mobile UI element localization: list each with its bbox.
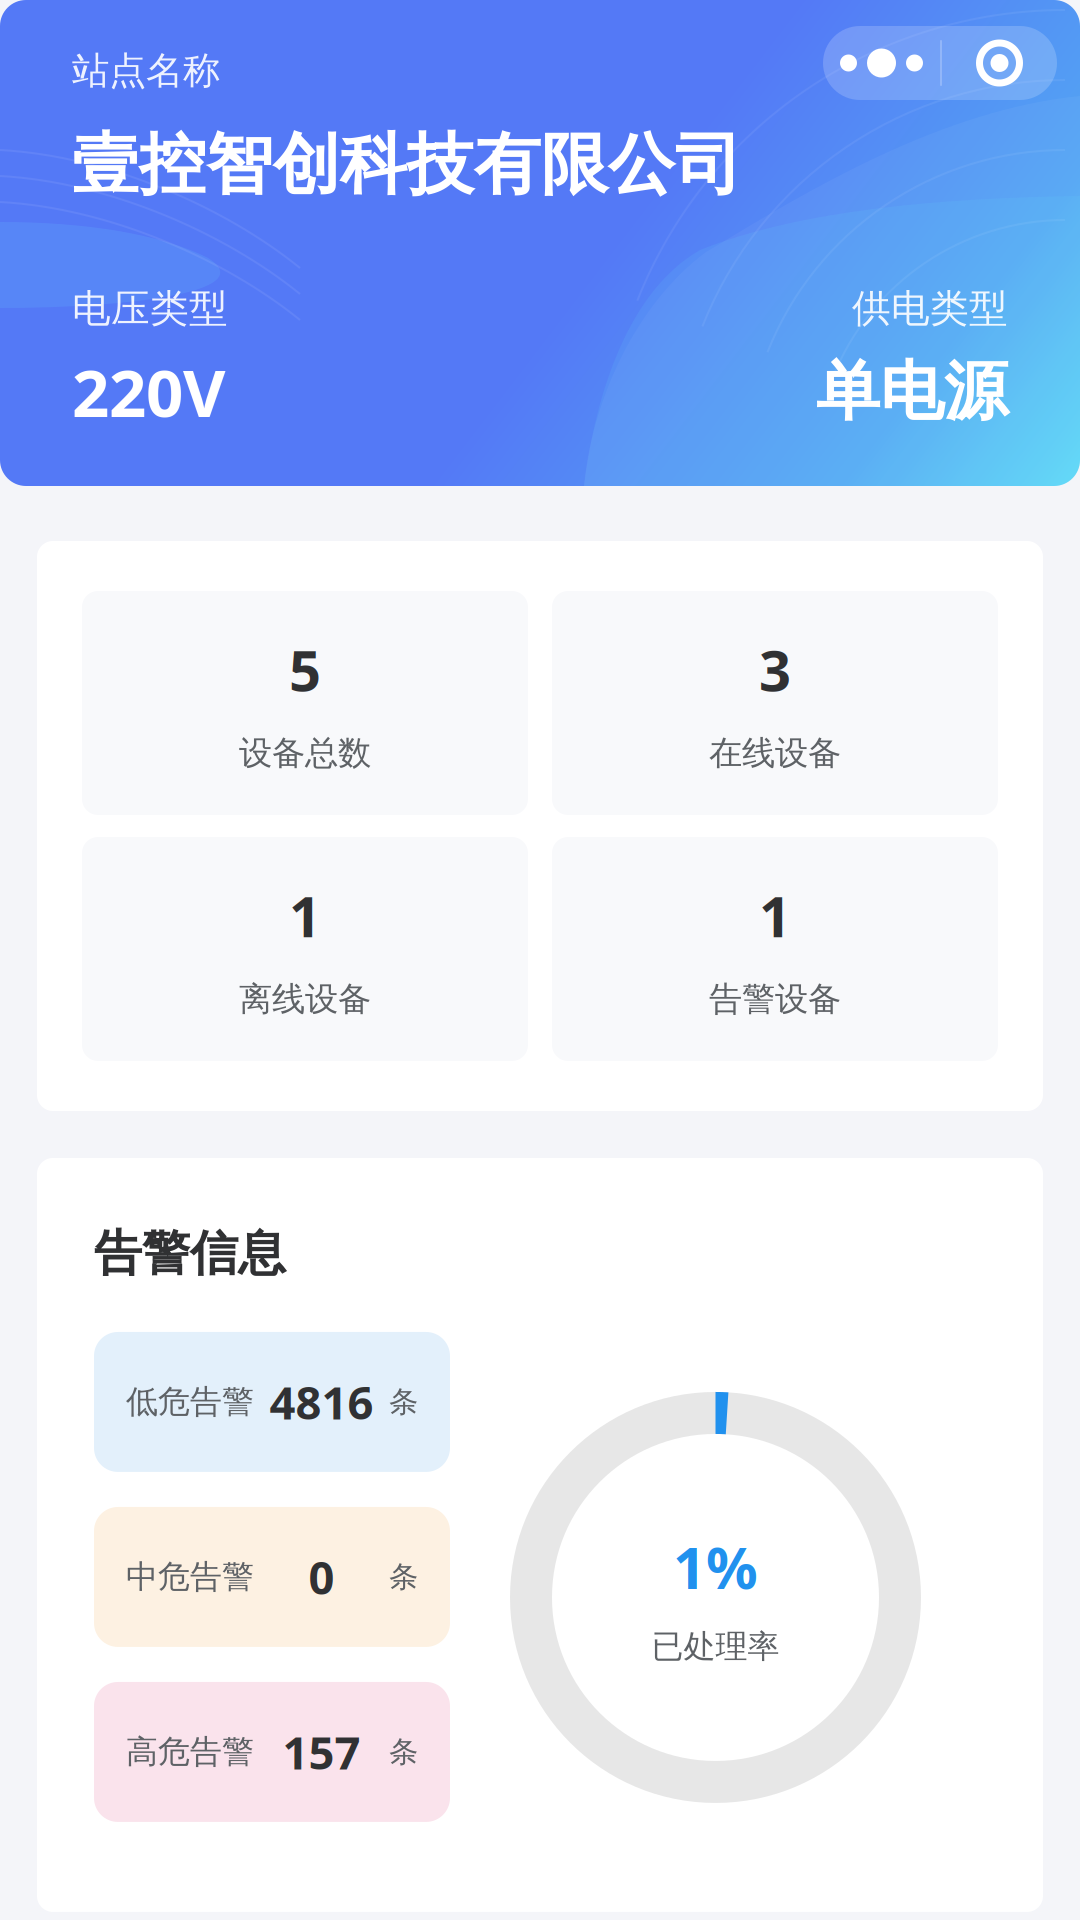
staticText: 条 bbox=[389, 1384, 418, 1420]
staticText: 5 bbox=[289, 632, 321, 707]
staticText: 壹控智创科技有限公司 bbox=[72, 124, 742, 206]
staticText: 220V bbox=[72, 348, 225, 435]
staticText: 离线设备 bbox=[239, 979, 371, 1020]
staticText: 1% bbox=[673, 1529, 758, 1605]
button[interactable]: 5 bbox=[82, 591, 528, 815]
staticText: 0 bbox=[308, 1547, 334, 1607]
staticText: 站点名称 bbox=[72, 48, 220, 94]
staticText: 4816 bbox=[269, 1372, 373, 1432]
staticText: 中危告警 bbox=[126, 1557, 254, 1597]
staticText: 已处理率 bbox=[651, 1627, 779, 1666]
button[interactable]: 3 bbox=[552, 591, 998, 815]
staticText: 告警信息 bbox=[94, 1224, 286, 1283]
staticText: 高危告警 bbox=[126, 1732, 254, 1772]
staticText: 1 bbox=[289, 878, 321, 953]
button[interactable]: 1 bbox=[82, 837, 528, 1061]
staticText: 3 bbox=[759, 632, 791, 707]
staticText: 在线设备 bbox=[709, 733, 841, 774]
button[interactable]: More options bbox=[823, 26, 940, 100]
staticText: 供电类型 bbox=[852, 285, 1008, 332]
button[interactable]: Close mini program bbox=[942, 26, 1057, 100]
staticText: 设备总数 bbox=[239, 733, 371, 774]
button[interactable]: 1 bbox=[552, 837, 998, 1061]
button[interactable]: 低危告警 bbox=[94, 1332, 450, 1472]
staticText: 条 bbox=[389, 1559, 418, 1595]
staticText: 单电源 bbox=[816, 352, 1008, 431]
staticText: 157 bbox=[282, 1722, 360, 1782]
staticText: 条 bbox=[389, 1734, 418, 1770]
staticText: 1 bbox=[759, 878, 791, 953]
button[interactable]: 高危告警 bbox=[94, 1682, 450, 1822]
button[interactable]: 中危告警 bbox=[94, 1507, 450, 1647]
staticText: 低危告警 bbox=[126, 1382, 254, 1422]
staticText: 告警设备 bbox=[709, 979, 841, 1020]
staticText: 电压类型 bbox=[72, 285, 228, 332]
